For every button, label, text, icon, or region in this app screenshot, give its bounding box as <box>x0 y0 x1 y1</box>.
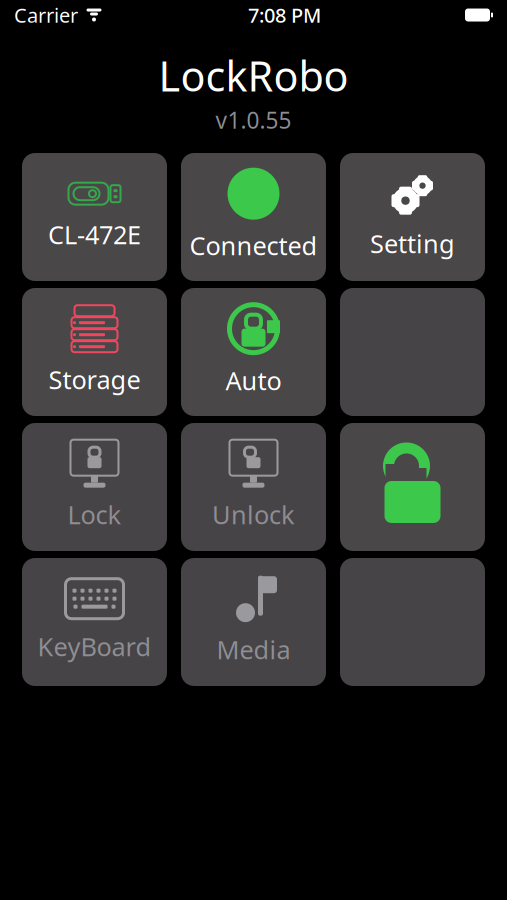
button[interactable]: Connected <box>181 153 326 281</box>
staticText: v1.0.55 <box>215 105 291 135</box>
staticText: Lock <box>67 498 121 531</box>
button[interactable]: Unlock <box>340 423 485 551</box>
button[interactable]: Media <box>181 558 326 686</box>
staticText: Connected <box>189 229 317 262</box>
staticText: LockRobo <box>158 48 348 103</box>
button[interactable]: Auto <box>181 288 326 416</box>
button[interactable]: CL-472E <box>22 153 167 281</box>
button[interactable]: Lock <box>22 423 167 551</box>
button[interactable]: Unlock <box>181 423 326 551</box>
button[interactable]: Storage <box>22 288 167 416</box>
staticText: Storage <box>48 363 140 396</box>
staticText: KeyBoard <box>37 630 151 663</box>
button[interactable]: Setting <box>340 153 485 281</box>
staticText: Media <box>216 633 290 666</box>
staticText: Auto <box>225 364 281 397</box>
staticText: Setting <box>370 227 455 260</box>
staticText: Unlock <box>212 498 295 531</box>
staticText: 7:08 PM <box>248 2 321 28</box>
staticText: CL-472E <box>48 218 141 251</box>
button[interactable]: KeyBoard <box>22 558 167 686</box>
staticText: Carrier <box>14 2 78 28</box>
